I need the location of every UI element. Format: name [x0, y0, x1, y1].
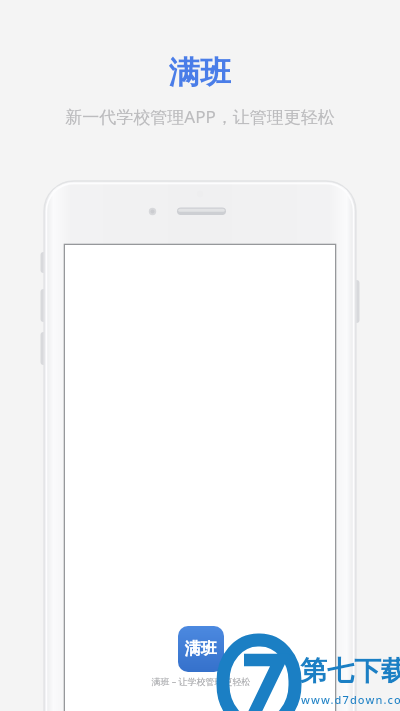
staticText: www.d7down.com — [301, 692, 400, 707]
staticText: 新一代学校管理APP，让管理更轻松 — [65, 105, 335, 128]
staticText: 满班 — [169, 53, 231, 91]
staticText: 满班 – 让学校管理更轻松 — [151, 675, 251, 687]
staticText: 满班 — [185, 639, 217, 659]
staticText: 第七下载站 — [300, 654, 400, 688]
button[interactable]: 满班 application icon — [178, 626, 224, 672]
